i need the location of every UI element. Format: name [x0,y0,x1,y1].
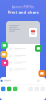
staticText: Scanner PDF file [11,5,34,9]
staticText: Print and share [7,10,38,15]
